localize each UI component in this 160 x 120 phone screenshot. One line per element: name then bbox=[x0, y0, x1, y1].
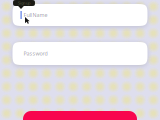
button[interactable] bbox=[23, 111, 137, 120]
staticText: Sign up bbox=[18, 0, 30, 6]
button[interactable]: Password bbox=[12, 42, 147, 65]
button[interactable]: Full Name bbox=[12, 4, 147, 26]
staticText: Full Name bbox=[23, 11, 47, 19]
staticText: Password bbox=[23, 50, 47, 57]
